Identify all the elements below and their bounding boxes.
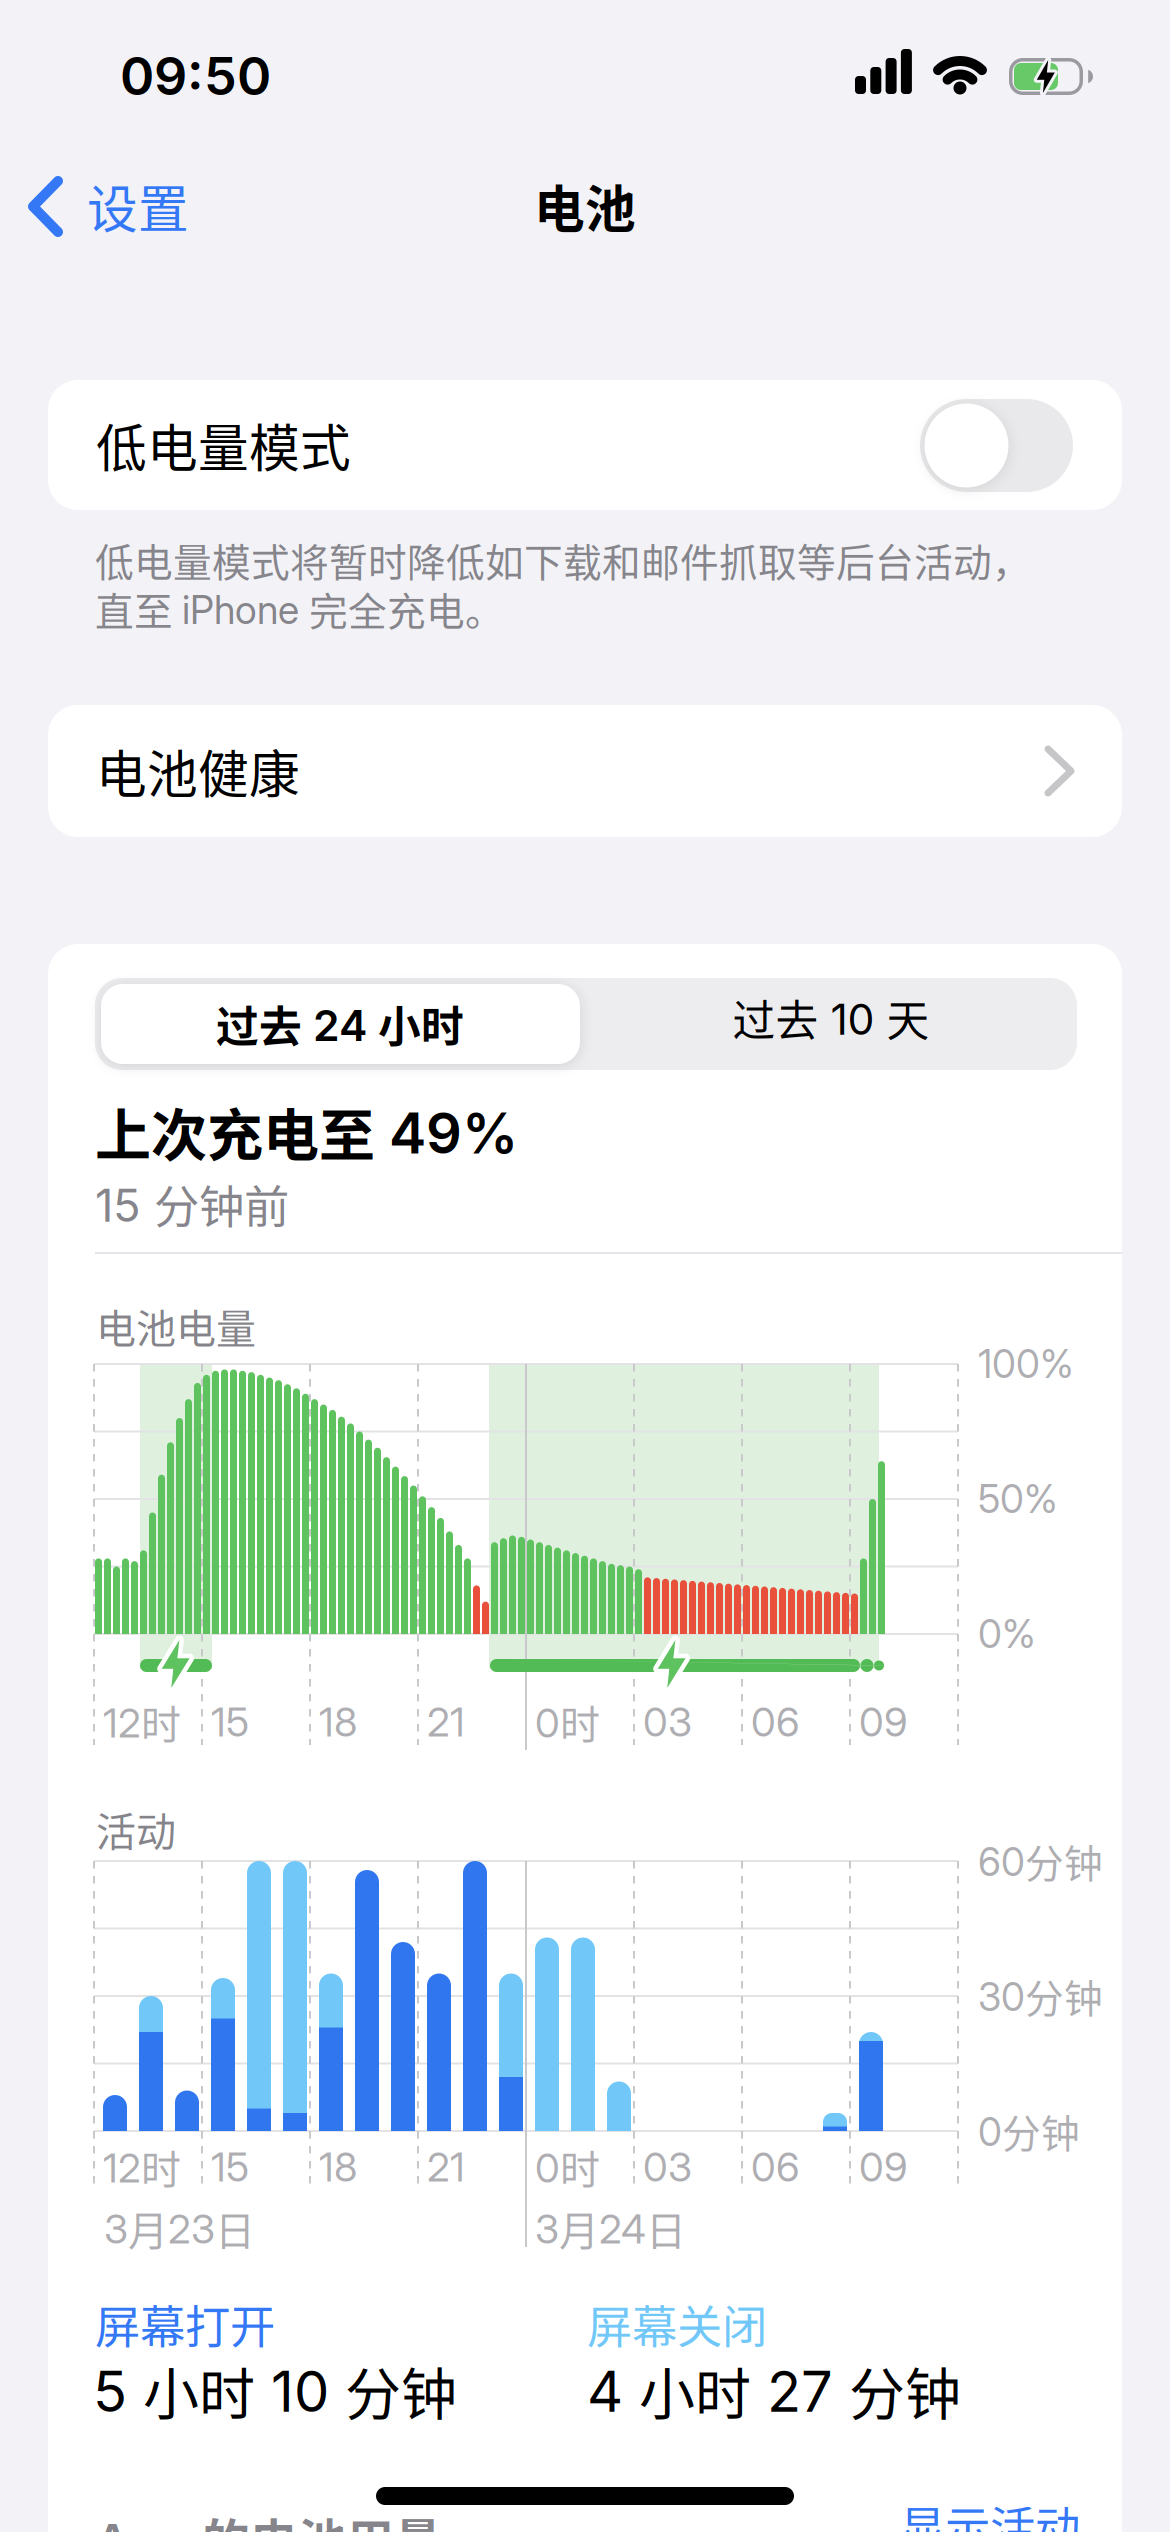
staticText: 屏幕关闭 (587, 2292, 767, 2356)
staticText: 12时 (103, 1694, 181, 1750)
staticText: 设置 (87, 170, 189, 242)
staticText: 电池健康 (96, 735, 300, 807)
staticText: 显示活动 (900, 2493, 1080, 2532)
staticText: 12时 (103, 2139, 181, 2195)
staticText: 15 分钟前 (95, 1172, 289, 1236)
staticText: 0分钟 (978, 2104, 1080, 2158)
staticText: 5 小时 10 分钟 (93, 2350, 457, 2430)
staticText: 60分钟 (978, 1834, 1103, 1888)
button[interactable]: 显示活动 (860, 2495, 1120, 2532)
staticText: 3月24日 (535, 2200, 686, 2256)
staticText: 0时 (535, 2139, 600, 2195)
staticText: 30分钟 (978, 1969, 1103, 2023)
staticText: 100% (978, 1341, 1074, 1387)
staticText: 18 (319, 1698, 357, 1746)
staticText: 09 (859, 1698, 908, 1746)
staticText: 低电量模式将暂时降低如下载和邮件抓取等后台活动， (95, 533, 1031, 587)
staticText: 18 (319, 2143, 357, 2191)
staticText: 09:50 (120, 45, 271, 107)
staticText: 0时 (535, 1694, 600, 1750)
staticText: 03 (643, 2143, 692, 2191)
button[interactable]: 电池健康 (48, 705, 1122, 837)
staticText: 15 (211, 1698, 249, 1746)
staticText: 50% (978, 1476, 1058, 1522)
button[interactable]: 设置 (24, 160, 274, 252)
staticText: 屏幕打开 (95, 2292, 275, 2356)
staticText: 过去 10 天 (732, 988, 929, 1048)
staticText: 06 (751, 1698, 800, 1746)
staticText: 0% (978, 1611, 1036, 1657)
staticText: 电池电量 (96, 1298, 256, 1354)
staticText: 06 (751, 2143, 800, 2191)
staticText: 上次充电至 49% (95, 1091, 518, 1171)
button[interactable]: 过去 10 天 (586, 978, 1077, 1070)
button[interactable]: 低电量模式 (920, 399, 1073, 492)
staticText: 活动 (96, 1801, 176, 1857)
staticText: 09 (859, 2143, 908, 2191)
staticText: 直至 iPhone 完全充电。 (95, 582, 504, 636)
staticText: 低电量模式 (96, 409, 351, 481)
staticText: 过去 24 小时 (216, 994, 464, 1054)
staticText: 4 小时 27 分钟 (587, 2350, 961, 2430)
staticText: App 的电池用量 (95, 2504, 442, 2532)
staticText: 电池 (534, 170, 636, 242)
staticText: 21 (427, 2143, 465, 2191)
staticText: 03 (643, 1698, 692, 1746)
staticText: 15 (211, 2143, 249, 2191)
staticText: 21 (427, 1698, 465, 1746)
staticText: 3月23日 (104, 2200, 255, 2256)
button[interactable]: 过去 24 小时 (101, 984, 580, 1064)
